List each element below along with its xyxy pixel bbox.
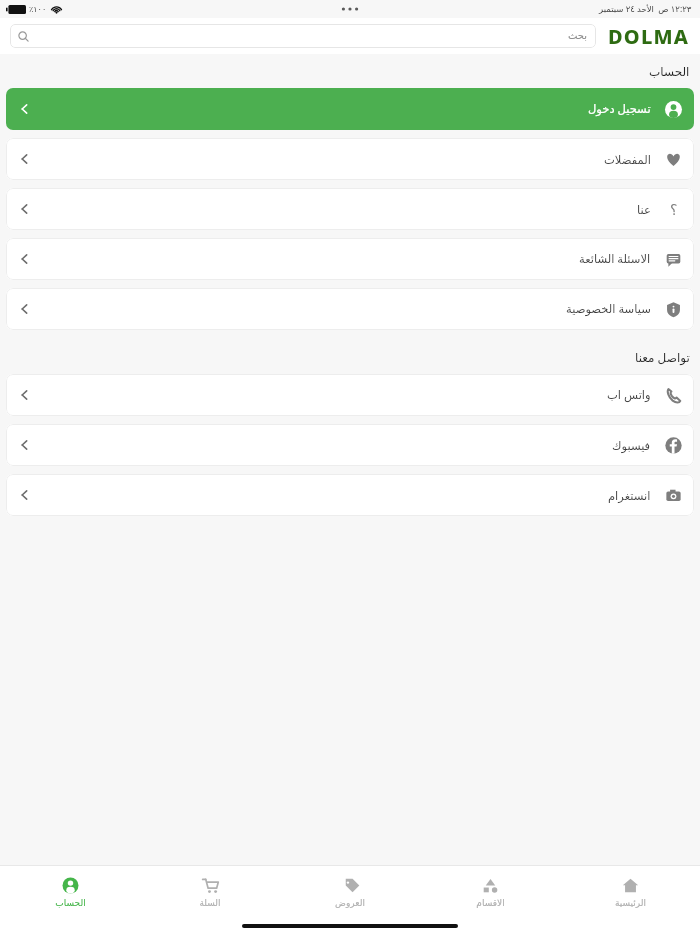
staticText: الاسئلة الشائعة (579, 251, 651, 267)
staticText: سياسة الخصوصية (566, 301, 651, 317)
staticText: واتس اب (607, 387, 651, 403)
staticText: ٪١٠٠ (29, 5, 47, 14)
button[interactable]: انستغرام (6, 474, 694, 516)
staticText: فيسبوك (612, 439, 651, 452)
staticText: الاقسام (476, 898, 505, 908)
button[interactable]: عنا (6, 188, 694, 230)
staticText: ١٢:٢٣ ص الأحد ٢٤ سبتمبر (599, 3, 692, 15)
staticText: تسجيل دخول (588, 101, 651, 117)
staticText: ؟ (670, 202, 678, 218)
staticText: الحساب (649, 65, 690, 79)
button[interactable]: المفضلات (6, 138, 694, 180)
staticText: الرئيسية (615, 898, 646, 908)
staticText: السلة (199, 898, 221, 908)
button[interactable]: تسجيل دخول (6, 88, 694, 130)
button[interactable]: سياسة الخصوصية (6, 288, 694, 330)
button[interactable]: الاقسام (420, 866, 560, 918)
staticText: المفضلات (604, 153, 651, 166)
button[interactable]: الحساب (0, 866, 140, 918)
staticText: DOLMA (608, 23, 690, 50)
staticText: العروض (335, 898, 365, 908)
staticText: بحث (568, 30, 588, 42)
staticText: تواصل معنا (635, 349, 690, 365)
button[interactable]: بحث (10, 24, 596, 48)
button[interactable]: العروض (280, 866, 420, 918)
button[interactable]: السلة (140, 866, 280, 918)
button[interactable]: واتس اب (6, 374, 694, 416)
button[interactable]: الاسئلة الشائعة (6, 238, 694, 280)
button[interactable]: فيسبوك (6, 424, 694, 466)
staticText: الحساب (55, 898, 86, 908)
staticText: عنا (637, 203, 651, 216)
button[interactable]: الرئيسية (560, 866, 700, 918)
staticText: انستغرام (608, 489, 651, 502)
